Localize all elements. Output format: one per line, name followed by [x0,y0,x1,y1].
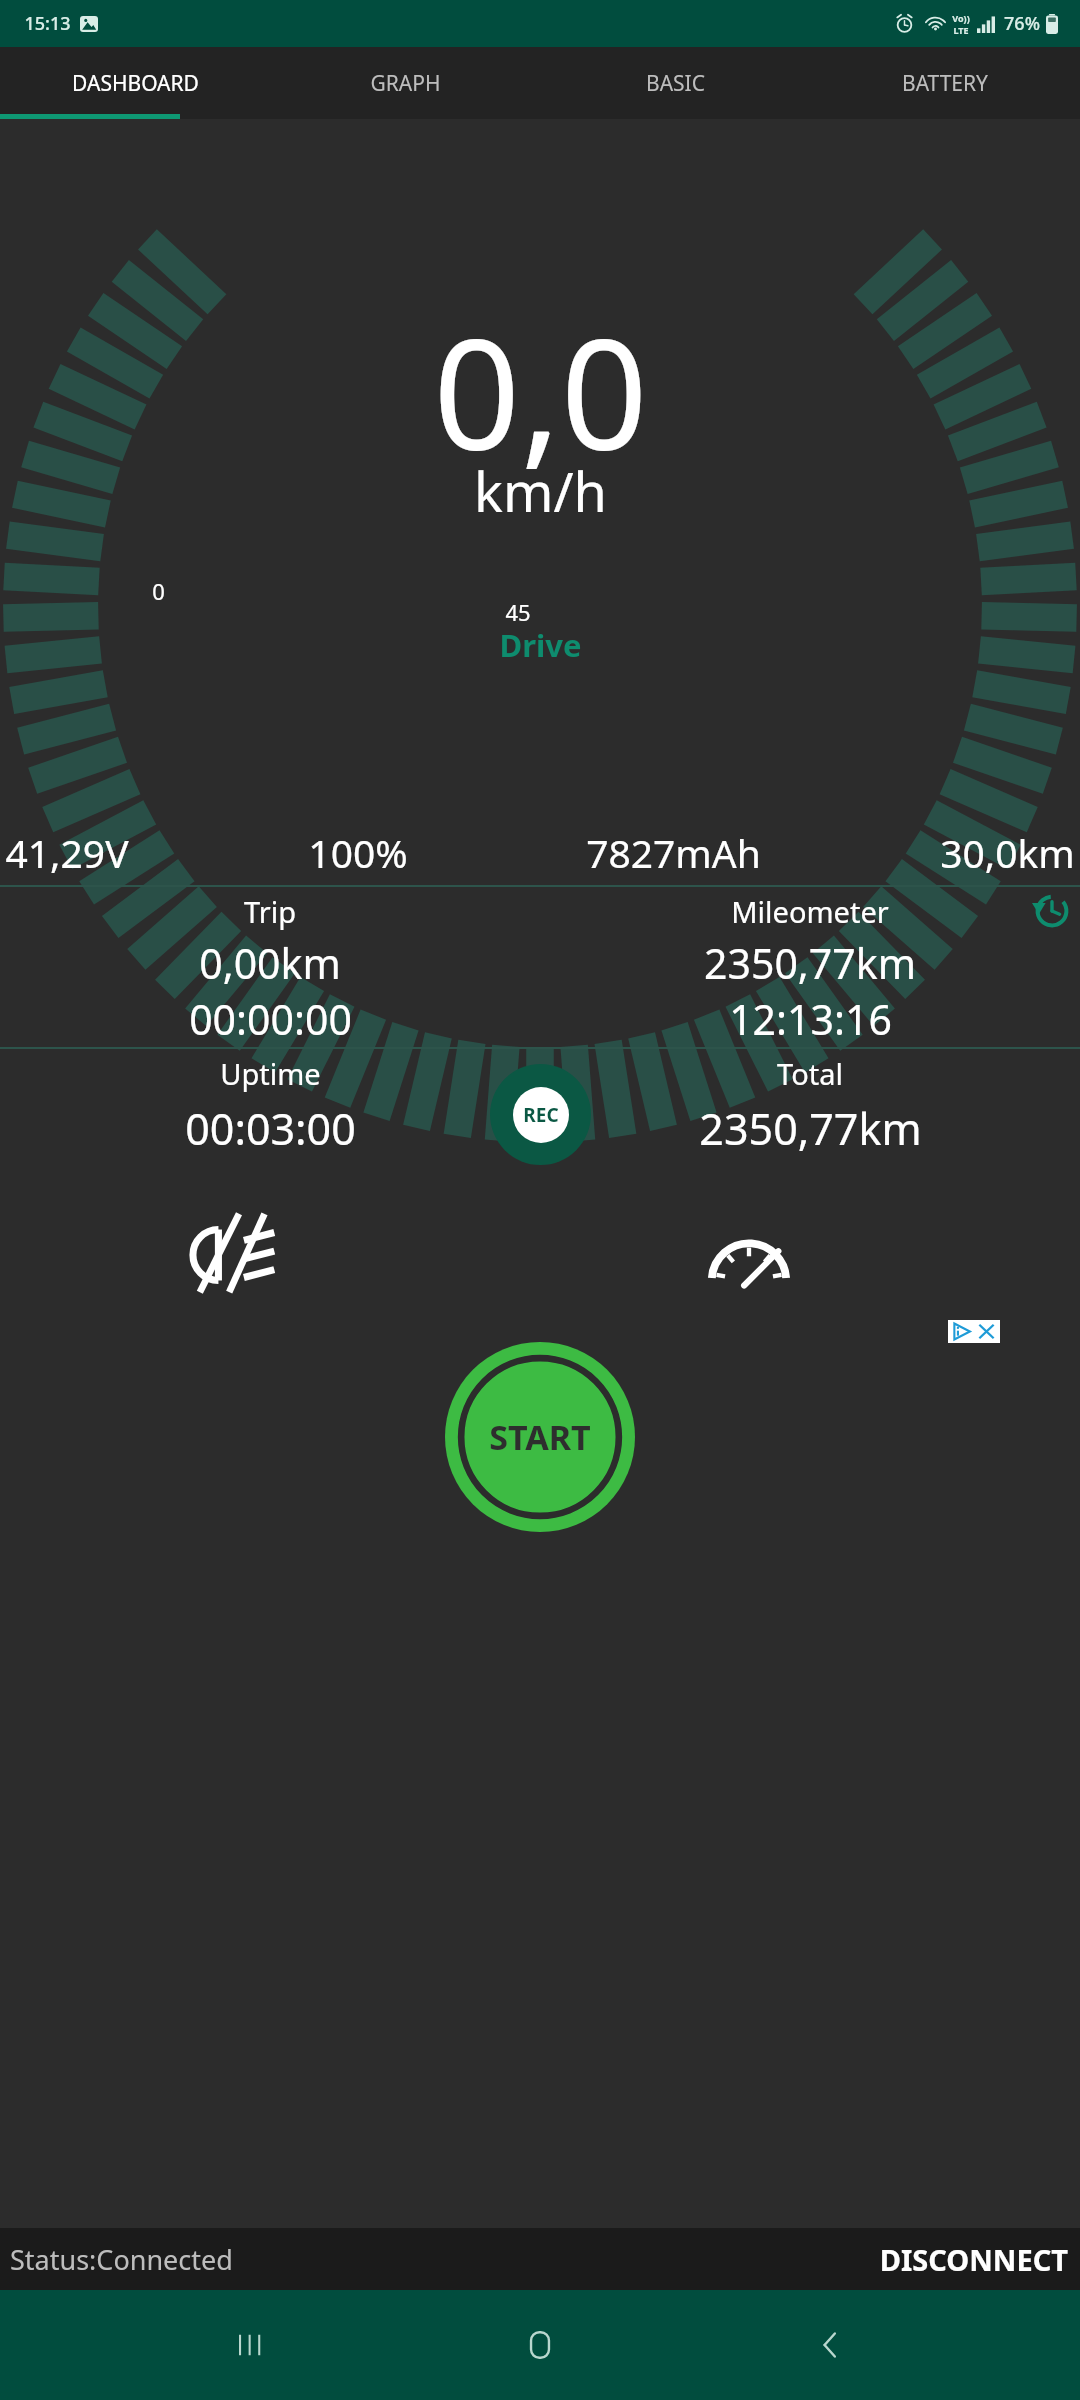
button[interactable]: DISCONNECT [867,2232,1080,2287]
staticText: 41,29V [5,826,129,879]
button[interactable]: Recent apps [207,2303,291,2387]
staticText: km/h [474,454,607,528]
staticText: Vo)) [952,12,970,24]
button[interactable]: START [445,1342,635,1532]
staticText: 0,00km [199,935,341,991]
staticText: 76% [1004,11,1040,36]
button[interactable]: Close ad [951,1321,997,1342]
staticText: Mileometer [731,892,889,931]
button[interactable]: BASIC [540,47,810,119]
staticText: GRAPH [370,69,441,98]
button[interactable]: Back [789,2303,873,2387]
button[interactable]: History [1032,891,1072,931]
staticText: 0 [152,576,165,606]
button[interactable]: Cruise control [700,1212,798,1310]
button[interactable]: Home [498,2303,582,2387]
staticText: 7827mAh [586,826,761,879]
staticText: 0,0 [433,287,648,494]
staticText: Uptime [220,1054,321,1093]
staticText: BASIC [646,69,705,98]
button[interactable]: Headlight off [190,1206,288,1304]
staticText: 45 [505,597,531,627]
staticText: Total [777,1054,843,1093]
button[interactable]: BATTERY [810,47,1080,119]
staticText: Drive [499,624,582,666]
button[interactable]: DASHBOARD [0,47,270,119]
staticText: DISCONNECT [879,2240,1068,2279]
staticText: LTE [953,24,969,36]
staticText: 15:13 [24,11,71,36]
staticText: 12:13:16 [729,991,892,1047]
staticText: BATTERY [902,69,988,98]
staticText: 30,0km [940,826,1075,879]
staticText: REC [523,1102,559,1128]
staticText: 2350,77km [704,935,916,991]
staticText: Trip [244,892,296,931]
staticText: START [489,1414,591,1460]
staticText: Status:Connected [10,2241,233,2278]
staticText: 00:03:00 [185,1099,356,1158]
button[interactable]: Record [490,1064,591,1165]
staticText: DASHBOARD [72,69,199,98]
button[interactable]: GRAPH [270,47,540,119]
staticText: 100% [308,826,408,879]
staticText: 00:00:00 [189,991,352,1047]
staticText: 2350,77km [699,1099,922,1158]
